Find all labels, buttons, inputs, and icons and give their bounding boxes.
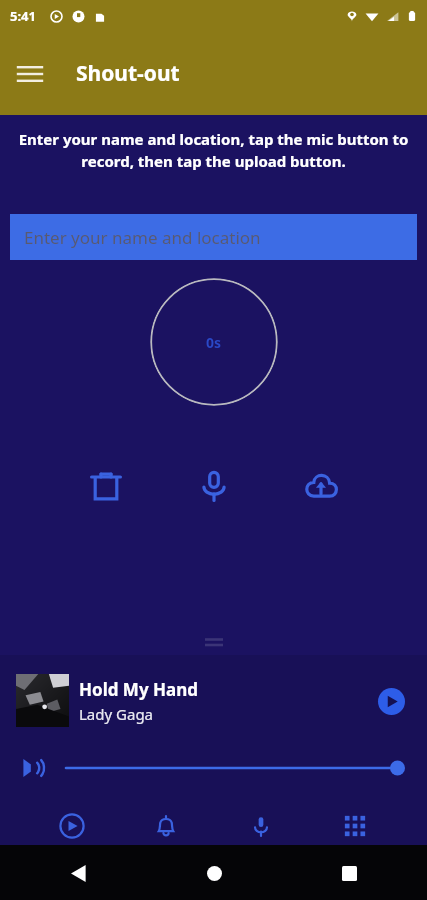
button[interactable]: Back — [58, 853, 98, 893]
button[interactable]: Apps — [333, 807, 377, 845]
button[interactable]: Microphone — [239, 807, 283, 845]
button[interactable]: Record — [190, 462, 238, 510]
staticText: 0s — [206, 333, 222, 352]
button[interactable]: Recording timer — [150, 278, 278, 406]
button[interactable]: Home — [194, 853, 234, 893]
staticText: Hold My Hand — [79, 678, 198, 701]
button[interactable]: Enter your name and location — [10, 214, 417, 260]
button[interactable]: Notifications — [144, 807, 188, 845]
button[interactable]: Recent apps — [329, 853, 369, 893]
button[interactable]: Play — [371, 681, 411, 721]
staticText: Enter your name and location — [24, 226, 261, 249]
button[interactable]: Volume — [16, 751, 50, 785]
button[interactable]: Hold My Hand — [0, 674, 427, 727]
staticText: 5:41 — [10, 7, 36, 25]
staticText: Enter your name and location, tap the mi… — [12, 129, 415, 172]
button[interactable]: Play — [50, 807, 94, 845]
button[interactable]: Delete recording — [82, 462, 130, 510]
button[interactable]: Open navigation drawer — [8, 52, 52, 96]
staticText: Lady Gaga — [79, 704, 154, 724]
button[interactable]: Volume slider — [66, 757, 405, 779]
button[interactable]: Upload — [297, 462, 345, 510]
staticText: Shout-out — [76, 59, 180, 88]
